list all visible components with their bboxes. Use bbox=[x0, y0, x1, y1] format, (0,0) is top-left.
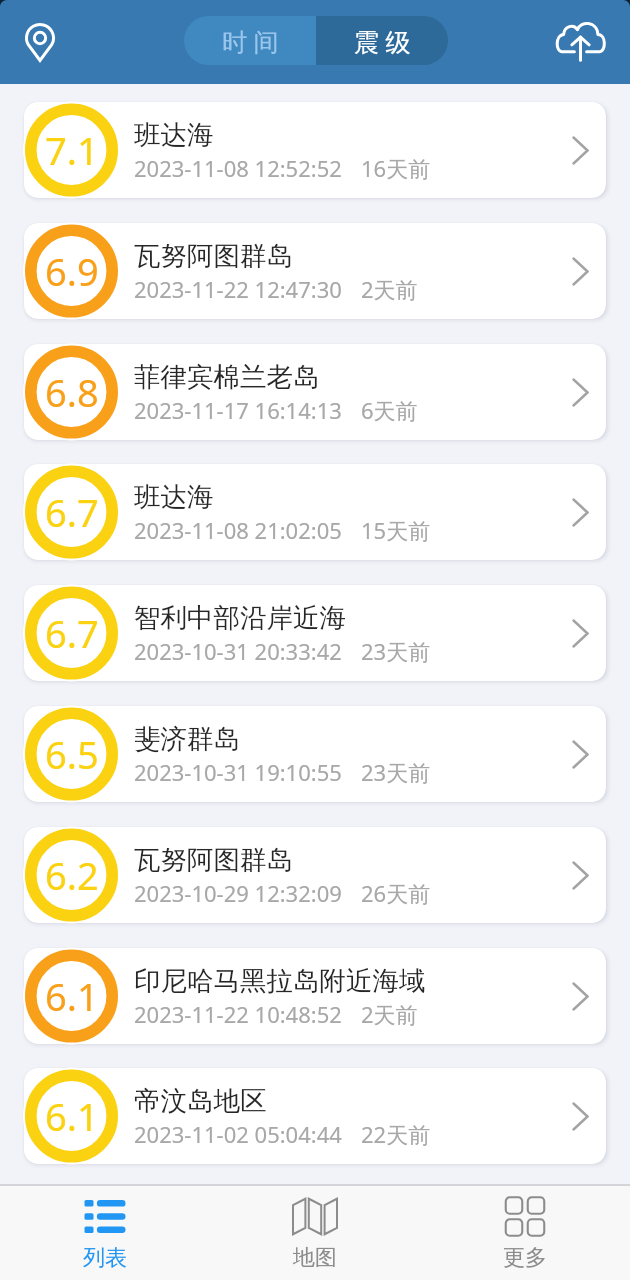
button[interactable]: 班达海 bbox=[24, 464, 606, 560]
staticText: 帝汶岛地区 bbox=[134, 1084, 267, 1117]
staticText: 地图 bbox=[293, 1244, 337, 1272]
button[interactable]: 地图 bbox=[210, 1198, 420, 1280]
staticText: 2023-11-02 05:04:44 bbox=[134, 1119, 342, 1149]
staticText: 6.5 bbox=[45, 728, 99, 780]
staticText: 6.2 bbox=[45, 849, 99, 901]
staticText: 15天前 bbox=[361, 515, 431, 545]
staticText: 6.9 bbox=[45, 245, 99, 297]
button[interactable]: Upload bbox=[552, 12, 608, 68]
staticText: 2023-10-29 12:32:09 bbox=[134, 878, 342, 908]
staticText: 2天前 bbox=[361, 274, 418, 304]
staticText: 时 间 bbox=[222, 24, 279, 58]
button[interactable]: 更多 bbox=[420, 1198, 630, 1280]
staticText: 印尼哈马黑拉岛附近海域 bbox=[134, 964, 426, 997]
staticText: 26天前 bbox=[361, 878, 431, 908]
staticText: 菲律宾棉兰老岛 bbox=[134, 360, 320, 393]
staticText: 瓦努阿图群岛 bbox=[134, 843, 293, 876]
button[interactable]: 智利中部沿岸近海 bbox=[24, 585, 606, 681]
staticText: 23天前 bbox=[361, 636, 431, 666]
staticText: 班达海 bbox=[134, 118, 214, 151]
button[interactable]: 帝汶岛地区 bbox=[24, 1068, 606, 1164]
staticText: 更多 bbox=[503, 1244, 547, 1272]
staticText: 班达海 bbox=[134, 480, 214, 513]
staticText: 23天前 bbox=[361, 757, 431, 787]
button[interactable]: 印尼哈马黑拉岛附近海域 bbox=[24, 948, 606, 1044]
staticText: 6.8 bbox=[45, 366, 99, 418]
staticText: 斐济群岛 bbox=[134, 722, 240, 755]
button[interactable]: 瓦努阿图群岛 bbox=[24, 827, 606, 923]
button[interactable]: 班达海 bbox=[24, 102, 606, 198]
staticText: 2023-11-08 12:52:52 bbox=[134, 153, 342, 183]
staticText: 22天前 bbox=[361, 1119, 431, 1149]
staticText: 2023-11-08 21:02:05 bbox=[134, 515, 342, 545]
button[interactable]: 瓦努阿图群岛 bbox=[24, 223, 606, 319]
staticText: 2023-11-17 16:14:13 bbox=[134, 395, 342, 425]
staticText: 列表 bbox=[83, 1244, 127, 1272]
staticText: 2023-11-22 10:48:52 bbox=[134, 999, 342, 1029]
staticText: 6.1 bbox=[45, 970, 99, 1022]
button[interactable]: Location bbox=[12, 14, 68, 70]
button[interactable]: 震 级 bbox=[316, 16, 448, 65]
staticText: 智利中部沿岸近海 bbox=[134, 601, 346, 634]
button[interactable]: 列表 bbox=[0, 1198, 210, 1280]
button[interactable]: 菲律宾棉兰老岛 bbox=[24, 344, 606, 440]
staticText: 6.1 bbox=[45, 1090, 99, 1142]
staticText: 6.7 bbox=[45, 486, 99, 538]
staticText: 6天前 bbox=[361, 395, 418, 425]
staticText: 16天前 bbox=[361, 153, 431, 183]
staticText: 2天前 bbox=[361, 999, 418, 1029]
staticText: 震 级 bbox=[354, 24, 411, 58]
staticText: 2023-10-31 20:33:42 bbox=[134, 636, 342, 666]
staticText: 2023-10-31 19:10:55 bbox=[134, 757, 342, 787]
staticText: 2023-11-22 12:47:30 bbox=[134, 274, 342, 304]
staticText: 6.7 bbox=[45, 607, 99, 659]
button[interactable]: 时 间 bbox=[184, 16, 316, 65]
staticText: 7.1 bbox=[45, 124, 99, 176]
button[interactable]: 斐济群岛 bbox=[24, 706, 606, 802]
staticText: 瓦努阿图群岛 bbox=[134, 239, 293, 272]
